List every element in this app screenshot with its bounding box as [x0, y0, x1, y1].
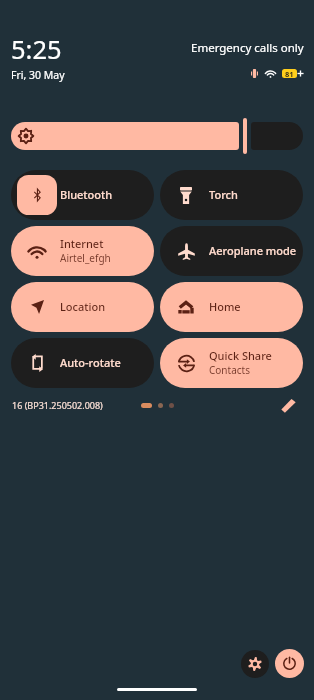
button[interactable]: Bluetooth — [11, 170, 154, 220]
staticText: Location — [60, 299, 106, 314]
button[interactable]: Brightness — [11, 122, 239, 150]
staticText: Internet — [60, 236, 104, 251]
staticText: 16 (BP31.250502.008) — [12, 399, 103, 411]
button[interactable]: Auto-rotate — [11, 338, 154, 388]
staticText: 81 — [285, 69, 294, 78]
staticText: Emergency calls only — [191, 40, 304, 56]
staticText: Bluetooth — [60, 187, 113, 202]
button[interactable]: Location — [11, 282, 154, 332]
staticText: Airtel_efgh — [60, 251, 111, 265]
staticText: 5:25 — [11, 32, 62, 67]
staticText: Fri, 30 May — [11, 68, 65, 82]
button[interactable]: Aeroplane mode — [160, 226, 303, 276]
button[interactable]: Internet — [11, 226, 154, 276]
button[interactable]: Quick Share — [160, 338, 303, 388]
staticText: Quick Share — [209, 348, 272, 363]
staticText: Torch — [209, 187, 238, 202]
button[interactable]: Power — [275, 649, 304, 678]
button[interactable]: Settings — [241, 650, 269, 678]
button[interactable]: Home — [160, 282, 303, 332]
staticText: Auto-rotate — [60, 355, 121, 370]
staticText: Aeroplane mode — [209, 243, 297, 258]
button[interactable]: Torch — [160, 170, 303, 220]
staticText: Contacts — [209, 363, 250, 377]
staticText: Home — [209, 299, 241, 314]
button[interactable]: Edit tiles — [281, 398, 296, 413]
